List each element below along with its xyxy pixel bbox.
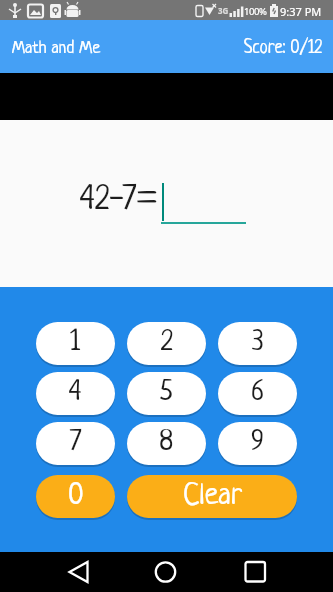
button[interactable]: 6 — [218, 372, 297, 415]
button[interactable]: 8 — [127, 422, 206, 465]
staticText: 5 — [160, 378, 173, 409]
staticText: 3 — [252, 328, 264, 359]
staticText: 42-7= — [80, 182, 158, 218]
button[interactable] — [222, 552, 333, 592]
staticText: Clear — [183, 480, 242, 513]
button[interactable]: Clear — [127, 475, 297, 518]
button[interactable] — [0, 552, 111, 592]
button[interactable]: 2 — [127, 322, 206, 365]
button[interactable]: 5 — [127, 372, 206, 415]
staticText: 0 — [68, 480, 84, 513]
staticText: 3G — [218, 5, 229, 16]
staticText: Math and Me — [12, 39, 101, 58]
button[interactable]: 4 — [36, 372, 115, 415]
button[interactable]: 0 — [36, 475, 115, 518]
staticText: 9 — [251, 428, 264, 459]
staticText: 8 — [159, 428, 174, 459]
staticText: 7 — [70, 428, 82, 459]
staticText: Score: 0/12 — [244, 39, 322, 58]
staticText: 6 — [251, 378, 264, 409]
staticText: 4 — [69, 378, 82, 409]
button[interactable] — [111, 552, 222, 592]
button[interactable]: 1 — [36, 322, 115, 365]
button[interactable]: 3 — [218, 322, 297, 365]
staticText: 2 — [161, 328, 173, 359]
button[interactable]: 9 — [218, 422, 297, 465]
button[interactable]: 7 — [36, 422, 115, 465]
staticText: 1 — [70, 328, 81, 359]
staticText: 9:37 PM — [280, 4, 322, 19]
staticText: 100% — [244, 5, 267, 18]
